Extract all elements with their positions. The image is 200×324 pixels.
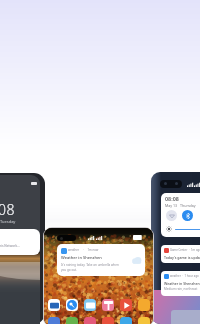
button[interactable]: Wi-Fi [166,210,177,221]
button[interactable]: Bluetooth [182,210,193,221]
button[interactable]: App 9 [84,317,96,324]
staticText: this Network... [0,244,20,248]
button[interactable]: weather · 1 hour ago [161,271,200,296]
button[interactable]: this Network... [0,229,40,255]
button[interactable]: weather · 1m now [57,244,145,276]
button[interactable]: App 2 [66,299,78,311]
staticText: May 13 Thursday [165,203,196,208]
staticText: Medium rain, northeast [164,287,198,291]
staticText: Weather in Shenzhen [61,255,102,260]
staticText: Tuesday [0,219,16,224]
button[interactable]: Game Center · 1m ago [161,245,200,263]
staticText: you go out. [61,268,77,272]
button[interactable]: App 3 [84,299,96,311]
staticText: Weather in Shenzhen [164,281,200,286]
staticText: weather · 1m now [68,248,99,252]
staticText: Today's game is update [164,255,200,260]
staticText: It's raining today. Take an umbrella whe… [61,263,119,267]
button[interactable]: App 1 [48,299,60,311]
staticText: weather · 1 hour ago [170,274,199,278]
button[interactable]: App 11 [120,317,132,324]
button[interactable]: App 6 [138,299,150,311]
button[interactable]: App 5 [120,299,132,311]
staticText: 08 [0,200,16,219]
staticText: Game Center · 1m ago [170,248,200,252]
button[interactable]: App 8 [66,317,78,324]
button[interactable]: App 10 [102,317,114,324]
staticText: 08:08 [165,195,179,202]
button[interactable]: App 7 [48,317,60,324]
button[interactable]: App 4 [102,299,114,311]
button[interactable]: App 12 [138,317,150,324]
